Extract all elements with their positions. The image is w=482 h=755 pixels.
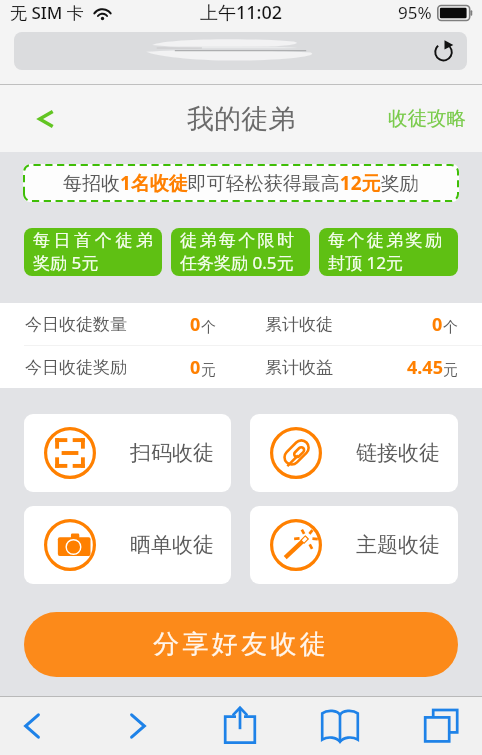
staticText: 每个徒弟奖励: [328, 230, 445, 251]
staticText: 0: [190, 312, 201, 337]
staticText: 封顶 12元: [328, 251, 403, 274]
staticText: 任务奖励 0.5元: [180, 251, 294, 274]
button[interactable]: Back: [24, 97, 68, 141]
button[interactable]: 收徒攻略: [380, 98, 474, 139]
staticText: 今日收徒数量: [25, 314, 127, 335]
button[interactable]: Reload: [14, 32, 467, 70]
staticText: 上午11:02: [200, 0, 283, 25]
staticText: 奖励 5元: [33, 251, 99, 274]
staticText: 0: [432, 312, 443, 337]
button[interactable]: Share: [218, 698, 262, 754]
staticText: 我的徒弟: [187, 102, 295, 136]
button[interactable]: 主题收徒: [250, 506, 458, 584]
staticText: 晒单收徒: [130, 532, 214, 558]
staticText: 收徒攻略: [388, 106, 466, 131]
button[interactable]: 链接收徒: [250, 414, 458, 492]
staticText: 个: [443, 318, 458, 337]
staticText: 0: [190, 355, 201, 380]
button[interactable]: Forward: [116, 698, 160, 754]
staticText: 累计收徒: [265, 314, 333, 335]
staticText: 徒弟每个限时: [180, 230, 297, 251]
staticText: 元: [201, 361, 216, 380]
staticText: 个: [201, 318, 216, 337]
staticText: 每招收1名收徒即可轻松获得最高12元奖励: [63, 170, 419, 196]
button[interactable]: 徒弟每个限时: [171, 228, 310, 276]
button[interactable]: Reload: [428, 36, 458, 66]
button[interactable]: Tabs: [414, 698, 458, 754]
button[interactable]: 每日首个徒弟: [24, 228, 162, 276]
staticText: 主题收徒: [356, 532, 440, 558]
button[interactable]: 每个徒弟奖励: [319, 228, 458, 276]
staticText: 4.45: [407, 355, 443, 380]
button[interactable]: 晒单收徒: [24, 506, 231, 584]
button[interactable]: Back: [10, 698, 54, 754]
button[interactable]: 扫码收徒: [24, 414, 231, 492]
staticText: 元: [443, 361, 458, 380]
staticText: 累计收益: [265, 357, 333, 378]
staticText: 无 SIM 卡: [10, 1, 84, 24]
button[interactable]: Bookmarks: [318, 698, 362, 754]
staticText: 每日首个徒弟: [33, 230, 157, 251]
staticText: 今日收徒奖励: [25, 357, 127, 378]
staticText: 95%: [398, 1, 432, 24]
staticText: 链接收徒: [356, 440, 440, 466]
staticText: 分享好友收徒: [153, 628, 330, 661]
staticText: 扫码收徒: [130, 440, 214, 466]
button[interactable]: 分享好友收徒: [24, 612, 458, 677]
